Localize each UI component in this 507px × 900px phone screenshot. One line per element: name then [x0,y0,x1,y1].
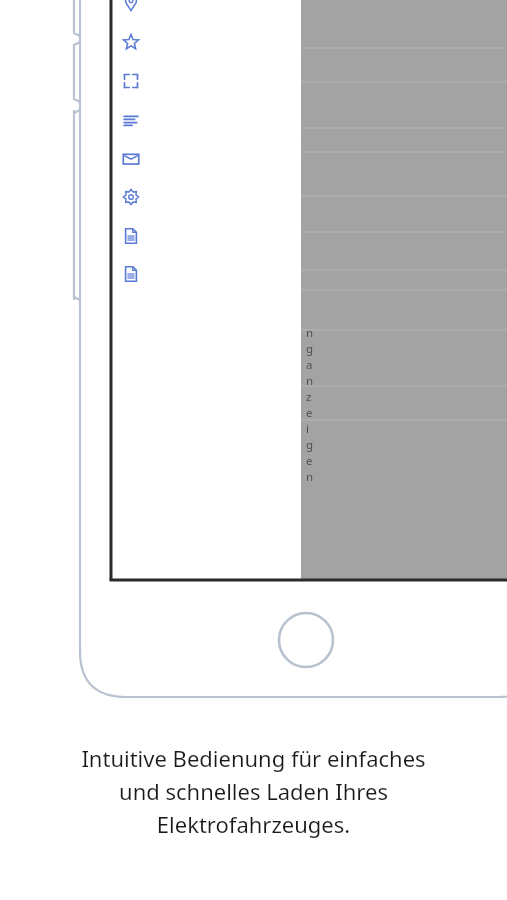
button[interactable]: DIREKT LADEN [112,62,301,100]
button[interactable]: EINSTELLUNGEN [112,178,301,216]
button[interactable]: FAVORITEN [112,23,301,61]
button[interactable]: LADESTATIONEN [112,0,301,22]
button[interactable]: DATENSCHUTZ [112,255,301,293]
button[interactable]: FEEDBACK [112,140,301,178]
staticText: Intuitive Bedienung für einfaches und sc… [26,743,481,839]
button[interactable]: IMPRESSUM [112,217,301,255]
button[interactable]: MEINE LADEVORGÄNGE [112,101,301,139]
